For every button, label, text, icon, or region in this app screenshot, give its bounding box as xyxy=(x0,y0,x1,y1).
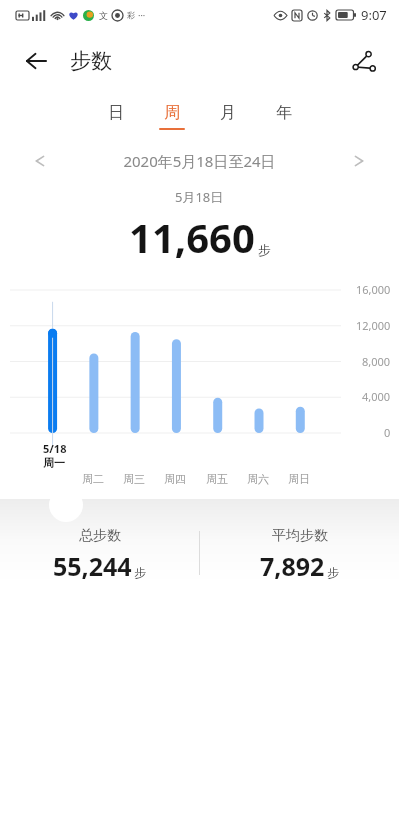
button[interactable]: 总步数 xyxy=(0,527,199,583)
button[interactable]: Back xyxy=(12,37,60,85)
staticText: ··· xyxy=(138,9,146,21)
staticText: 周一 xyxy=(43,456,65,470)
staticText: 步 xyxy=(258,242,271,258)
staticText: 周二 xyxy=(82,472,104,486)
button[interactable]: 年 xyxy=(256,92,312,140)
staticText: 年 xyxy=(276,103,292,123)
staticText: 0 xyxy=(384,425,391,440)
staticText: 55,244 xyxy=(53,549,132,583)
staticText: 步 xyxy=(327,565,339,580)
staticText: 2020年5月18日至24日 xyxy=(60,151,339,171)
button[interactable]: Previous week xyxy=(20,141,60,181)
staticText: 周 xyxy=(164,103,180,123)
staticText: 步 xyxy=(134,565,146,580)
staticText: 周五 xyxy=(206,472,228,486)
staticText: 周日 xyxy=(288,472,310,486)
staticText: 周四 xyxy=(164,472,186,486)
staticText: 步数 xyxy=(70,48,112,74)
staticText: 周三 xyxy=(123,472,145,486)
staticText: 11,660 xyxy=(129,210,255,264)
button[interactable]: 月 xyxy=(200,92,256,140)
staticText: 总步数 xyxy=(79,527,121,545)
staticText: 文 xyxy=(99,10,108,21)
button[interactable]: Share xyxy=(339,37,387,85)
staticText: 周六 xyxy=(247,472,269,486)
staticText: 日 xyxy=(108,103,124,123)
button[interactable]: Next week xyxy=(339,141,379,181)
button[interactable]: 周 xyxy=(144,92,200,140)
staticText: 12,000 xyxy=(356,318,391,333)
staticText: 9:07 xyxy=(361,6,387,24)
staticText: 7,892 xyxy=(260,549,325,583)
staticText: 彩 xyxy=(127,10,135,20)
staticText: 4,000 xyxy=(362,389,391,404)
staticText: 8,000 xyxy=(362,354,391,369)
staticText: 5/18 xyxy=(43,441,67,456)
staticText: 16,000 xyxy=(356,282,391,297)
button[interactable]: 日 xyxy=(88,92,144,140)
staticText: 平均步数 xyxy=(272,527,328,545)
button[interactable]: 平均步数 xyxy=(200,527,399,583)
staticText: 月 xyxy=(220,103,236,123)
staticText: 5月18日 xyxy=(175,188,224,206)
